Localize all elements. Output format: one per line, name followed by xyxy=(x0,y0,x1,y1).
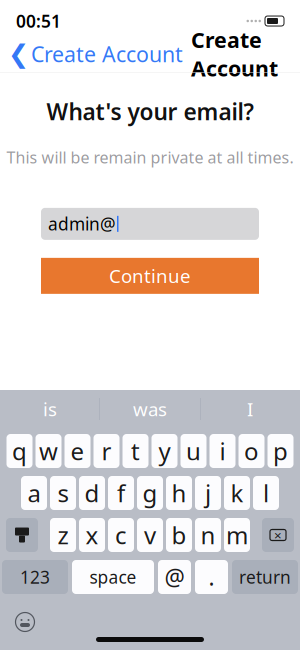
button[interactable]: h xyxy=(166,476,192,510)
staticText: e xyxy=(70,435,84,467)
button[interactable]: g xyxy=(137,476,163,510)
button[interactable]: y xyxy=(151,434,177,468)
staticText: c xyxy=(115,519,127,551)
staticText: x xyxy=(85,519,98,551)
button[interactable]: i xyxy=(209,434,235,468)
button[interactable]: o xyxy=(238,434,264,468)
staticText: m xyxy=(226,519,248,551)
staticText: admin@ xyxy=(48,212,116,235)
button[interactable]: q xyxy=(6,434,32,468)
staticText: Create Account xyxy=(191,26,278,82)
button[interactable]: I xyxy=(200,390,299,428)
staticText: a xyxy=(27,477,40,509)
button[interactable]: 123 xyxy=(2,560,68,594)
button[interactable]: f xyxy=(108,476,134,510)
staticText: . xyxy=(208,562,214,592)
staticText: return xyxy=(239,565,291,588)
button[interactable]: Emoji xyxy=(12,609,38,635)
button[interactable]: is xyxy=(0,390,99,428)
button[interactable]: x xyxy=(79,518,105,552)
staticText: 00:51 xyxy=(16,9,61,32)
staticText: t xyxy=(131,435,140,467)
button[interactable]: j xyxy=(195,476,221,510)
staticText: ❮ xyxy=(8,40,29,68)
staticText: I xyxy=(247,397,253,421)
button[interactable]: d xyxy=(79,476,105,510)
button[interactable]: was xyxy=(100,390,200,428)
button[interactable]: ❮ xyxy=(8,34,183,74)
button[interactable]: b xyxy=(166,518,192,552)
staticText: Create Account xyxy=(31,40,183,68)
staticText: v xyxy=(144,519,156,551)
button[interactable]: m xyxy=(224,518,250,552)
button[interactable]: s xyxy=(50,476,76,510)
staticText: What's your email? xyxy=(46,96,253,127)
button[interactable]: space xyxy=(72,560,154,594)
button[interactable]: v xyxy=(137,518,163,552)
staticText: Continue xyxy=(109,263,191,288)
button[interactable]: u xyxy=(180,434,206,468)
button[interactable]: e xyxy=(64,434,90,468)
button[interactable]: n xyxy=(195,518,221,552)
staticText: y xyxy=(158,435,170,467)
button[interactable]: @ xyxy=(158,560,191,594)
button[interactable]: return xyxy=(232,560,298,594)
button[interactable]: t xyxy=(122,434,148,468)
staticText: r xyxy=(101,435,111,467)
staticText: i xyxy=(219,435,225,467)
button[interactable]: w xyxy=(35,434,61,468)
staticText: z xyxy=(57,519,68,551)
staticText: g xyxy=(142,477,157,509)
staticText: is xyxy=(43,397,57,421)
button[interactable]: l xyxy=(253,476,279,510)
staticText: j xyxy=(205,477,211,509)
staticText: b xyxy=(171,519,186,551)
button[interactable]: . xyxy=(195,560,228,594)
staticText: was xyxy=(133,397,167,421)
staticText: h xyxy=(171,477,186,509)
button[interactable]: p xyxy=(267,434,293,468)
button[interactable]: r xyxy=(93,434,119,468)
staticText: 123 xyxy=(20,565,50,588)
staticText: u xyxy=(186,435,201,467)
button[interactable]: a xyxy=(21,476,47,510)
staticText: o xyxy=(244,435,259,467)
staticText: k xyxy=(230,477,243,509)
button[interactable]: c xyxy=(108,518,134,552)
button[interactable]: k xyxy=(224,476,250,510)
staticText: d xyxy=(84,477,99,509)
staticText: @ xyxy=(164,562,184,592)
button[interactable]: Delete xyxy=(262,518,294,552)
staticText: q xyxy=(12,435,27,467)
staticText: × xyxy=(274,526,282,544)
button[interactable]: Shift xyxy=(6,518,38,552)
staticText: p xyxy=(273,435,288,467)
staticText: space xyxy=(89,565,136,588)
button[interactable]: Continue xyxy=(41,258,259,294)
staticText: w xyxy=(39,435,58,467)
staticText: s xyxy=(57,477,68,509)
staticText: n xyxy=(200,519,215,551)
staticText: f xyxy=(117,477,125,509)
staticText: This will be remain private at all times… xyxy=(6,147,293,168)
button[interactable]: z xyxy=(50,518,76,552)
staticText: l xyxy=(263,477,269,509)
